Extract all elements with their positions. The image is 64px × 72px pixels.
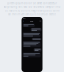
staticText: ‹ [23,19,24,23]
button[interactable]: Back [23,19,24,23]
staticText: Lorem ipsum dolor sit amet consectetur [7,1,57,5]
staticText: ad minim veniam quis nostrud exercit [8,12,56,16]
staticText: adipiscing elit sed do eiusmod tempor in… [3,5,60,9]
staticText: 9:41 [23,17,26,19]
staticText: ut labore et dolore magna aliqua ut enim [5,9,59,12]
button[interactable]: Menu [39,20,41,22]
staticText: Chat [30,20,34,22]
